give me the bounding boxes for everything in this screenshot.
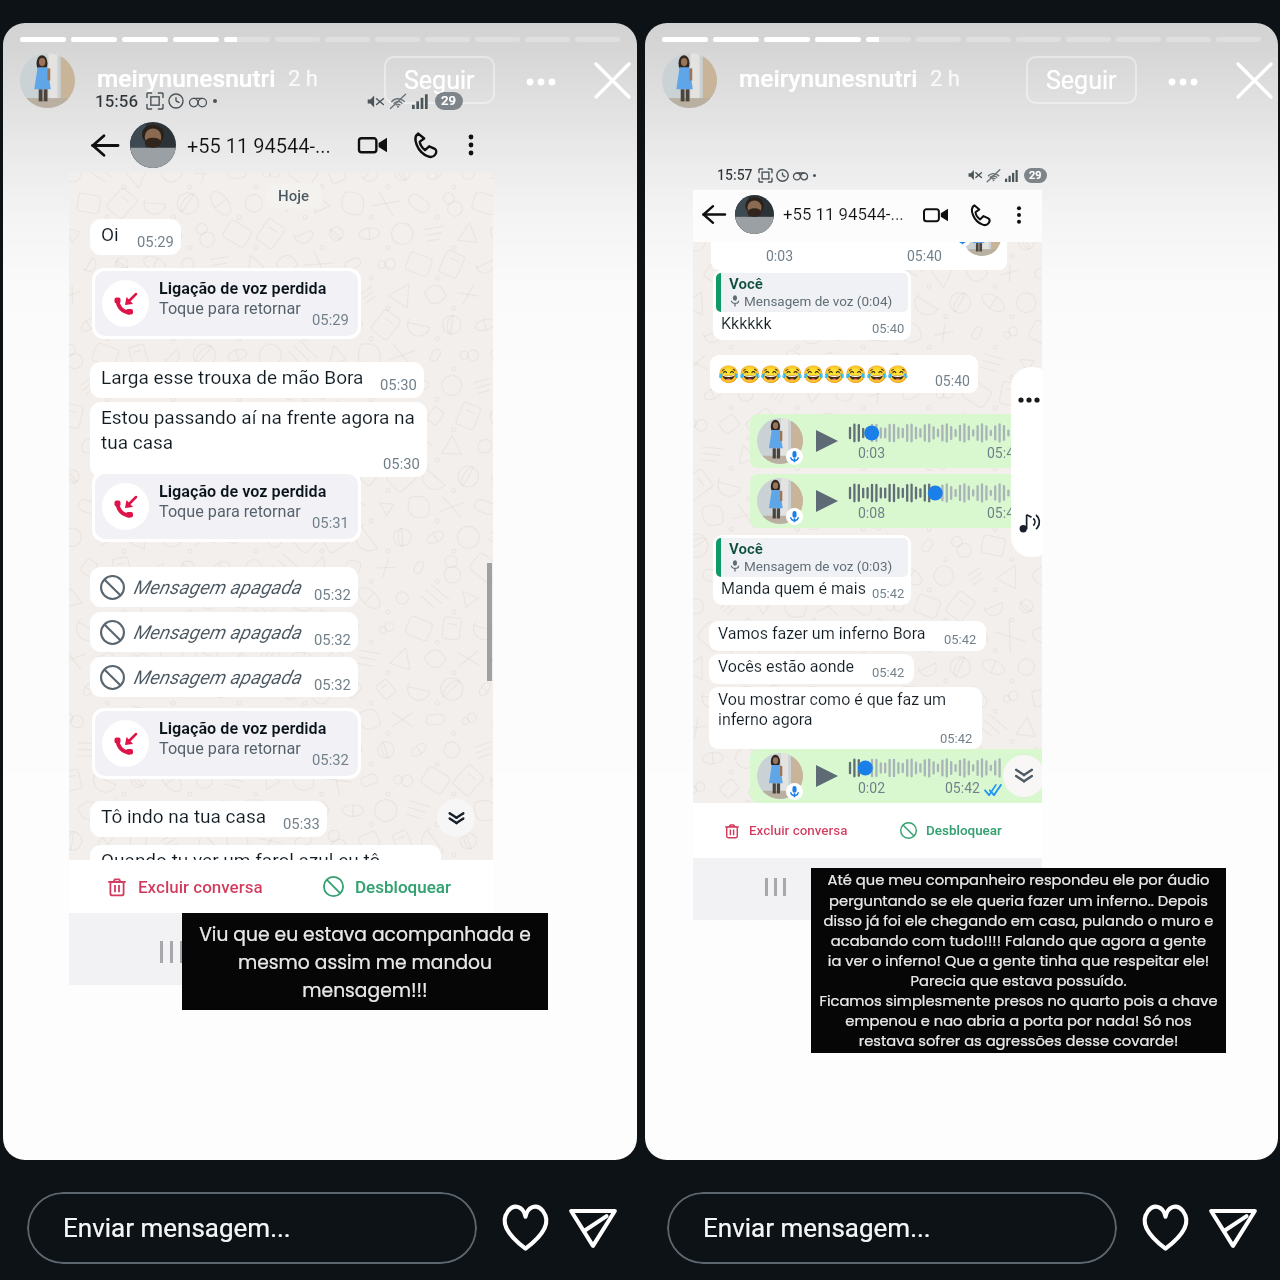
staticText: Mensagem apagada bbox=[133, 576, 301, 598]
staticText: 05:32 bbox=[312, 751, 349, 768]
staticText: 2 h bbox=[288, 66, 318, 92]
staticText: Vocês estão aonde bbox=[718, 657, 854, 676]
button[interactable]: Close bbox=[588, 56, 636, 104]
staticText: 05:29 bbox=[312, 311, 349, 328]
button[interactable]: Excluir conversa bbox=[724, 823, 848, 839]
staticText: 15:56 bbox=[95, 91, 139, 111]
staticText: Mensagem apagada bbox=[133, 621, 301, 643]
staticText: Vamos fazer um inferno Bora bbox=[718, 624, 926, 643]
button[interactable]: More bbox=[456, 130, 486, 160]
staticText: Vou mostrar como é que faz um inferno ag… bbox=[718, 690, 973, 729]
staticText: Hoje bbox=[278, 187, 310, 205]
staticText: Seguir bbox=[1046, 66, 1117, 95]
button[interactable]: Ligação de voz perdida bbox=[92, 471, 361, 542]
button[interactable]: Share bbox=[565, 1197, 621, 1253]
staticText: 05:33 bbox=[283, 815, 320, 832]
staticText: Kkkkkk bbox=[721, 314, 772, 333]
button[interactable]: More options bbox=[1158, 57, 1208, 107]
button[interactable]: Share bbox=[1205, 1197, 1261, 1253]
staticText: 05:42 bbox=[940, 731, 973, 746]
staticText: Mensagem apagada bbox=[133, 666, 301, 688]
staticText: 29 bbox=[441, 93, 457, 109]
staticText: 05:30 bbox=[380, 376, 417, 393]
button[interactable]: Ligação de voz perdida bbox=[92, 708, 361, 779]
staticText: Mensagem de voz (0:04) bbox=[744, 293, 893, 309]
staticText: Toque para retornar bbox=[159, 502, 301, 521]
staticText: Ligação de voz perdida bbox=[159, 279, 327, 298]
staticText: Oi bbox=[101, 223, 119, 245]
staticText: 2 h bbox=[930, 66, 960, 92]
staticText: Até que meu companheiro respondeu ele po… bbox=[811, 870, 1226, 1051]
staticText: 😂😂😂😂😂😂😂😂😂 bbox=[718, 364, 909, 384]
button[interactable]: Desbloquear bbox=[323, 876, 452, 897]
button[interactable]: Back bbox=[86, 127, 122, 163]
button[interactable]: Back bbox=[698, 199, 728, 229]
staticText: 15:57 bbox=[717, 167, 753, 183]
staticText: Larga esse trouxa de mão Bora bbox=[101, 366, 364, 388]
staticText: Você bbox=[729, 540, 763, 558]
staticText: 05:40 bbox=[935, 373, 970, 389]
button[interactable]: Like bbox=[497, 1199, 553, 1255]
button[interactable]: Scroll to bottom bbox=[1003, 755, 1042, 797]
staticText: Toque para retornar bbox=[159, 299, 301, 318]
staticText: 0:03 bbox=[858, 445, 885, 461]
staticText: 05:42 bbox=[872, 665, 905, 680]
button[interactable]: Enviar mensagem... bbox=[667, 1192, 1117, 1264]
button[interactable]: Voice call bbox=[965, 200, 994, 229]
button[interactable]: Enviar mensagem... bbox=[27, 1192, 477, 1264]
staticText: Manda quem é mais bbox=[721, 579, 866, 598]
staticText: 0:02 bbox=[858, 780, 885, 796]
staticText: 05:30 bbox=[383, 455, 420, 472]
staticText: 05:32 bbox=[314, 676, 351, 693]
button[interactable]: Desbloquear bbox=[900, 822, 1002, 839]
button[interactable]: Close bbox=[1230, 56, 1278, 104]
button[interactable]: Seguir bbox=[1026, 56, 1137, 104]
staticText: 05:42 bbox=[944, 632, 977, 647]
staticText: Seguir bbox=[404, 66, 475, 95]
staticText: Excluir conversa bbox=[749, 823, 848, 839]
button[interactable]: Ligação de voz perdida bbox=[92, 268, 361, 339]
staticText: Desbloquear bbox=[355, 877, 452, 897]
staticText: 0:08 bbox=[858, 505, 885, 521]
staticText: Desbloquear bbox=[926, 823, 1002, 839]
button[interactable]: More options bbox=[516, 57, 566, 107]
staticText: 05:40 bbox=[987, 445, 1022, 461]
staticText: 05:42 bbox=[945, 780, 980, 796]
staticText: 05:41 bbox=[987, 505, 1022, 521]
staticText: 05:32 bbox=[314, 631, 351, 648]
staticText: Tô indo na tua casa bbox=[101, 805, 267, 827]
staticText: 0:03 bbox=[766, 248, 793, 264]
button[interactable]: More bbox=[1006, 202, 1031, 227]
staticText: 05:29 bbox=[137, 233, 174, 250]
staticText: 29 bbox=[1029, 169, 1042, 182]
staticText: Ligação de voz perdida bbox=[159, 719, 327, 738]
staticText: Mensagem de voz (0:03) bbox=[744, 558, 893, 574]
staticText: Excluir conversa bbox=[138, 877, 263, 897]
staticText: Ligação de voz perdida bbox=[159, 482, 327, 501]
button[interactable]: Video call bbox=[921, 200, 950, 229]
staticText: meirynunesnutri bbox=[97, 64, 276, 93]
staticText: 05:32 bbox=[314, 586, 351, 603]
staticText: +55 11 94544-... bbox=[783, 204, 904, 224]
staticText: 05:40 bbox=[907, 248, 942, 264]
staticText: Você bbox=[729, 275, 763, 293]
staticText: Enviar mensagem... bbox=[63, 1213, 291, 1243]
staticText: 05:42 bbox=[872, 586, 905, 601]
button[interactable]: Excluir conversa bbox=[107, 877, 263, 897]
staticText: Enviar mensagem... bbox=[703, 1213, 931, 1243]
button[interactable]: Video call bbox=[356, 128, 390, 162]
staticText: Viu que eu estava acompanhada e mesmo as… bbox=[182, 921, 548, 1003]
staticText: +55 11 94544-... bbox=[187, 134, 331, 157]
button[interactable]: Like bbox=[1137, 1199, 1193, 1255]
staticText: 05:40 bbox=[872, 321, 905, 336]
staticText: Quando tu ver um farol azul eu tô bbox=[101, 849, 381, 860]
staticText: Toque para retornar bbox=[159, 739, 301, 758]
staticText: meirynunesnutri bbox=[739, 64, 918, 93]
button[interactable]: Seguir bbox=[384, 56, 495, 104]
staticText: Estou passando aí na frente agora na tua… bbox=[101, 406, 420, 453]
staticText: 05:31 bbox=[312, 514, 349, 531]
button[interactable]: Scroll to bottom bbox=[437, 799, 475, 837]
button[interactable]: Voice call bbox=[408, 128, 442, 162]
